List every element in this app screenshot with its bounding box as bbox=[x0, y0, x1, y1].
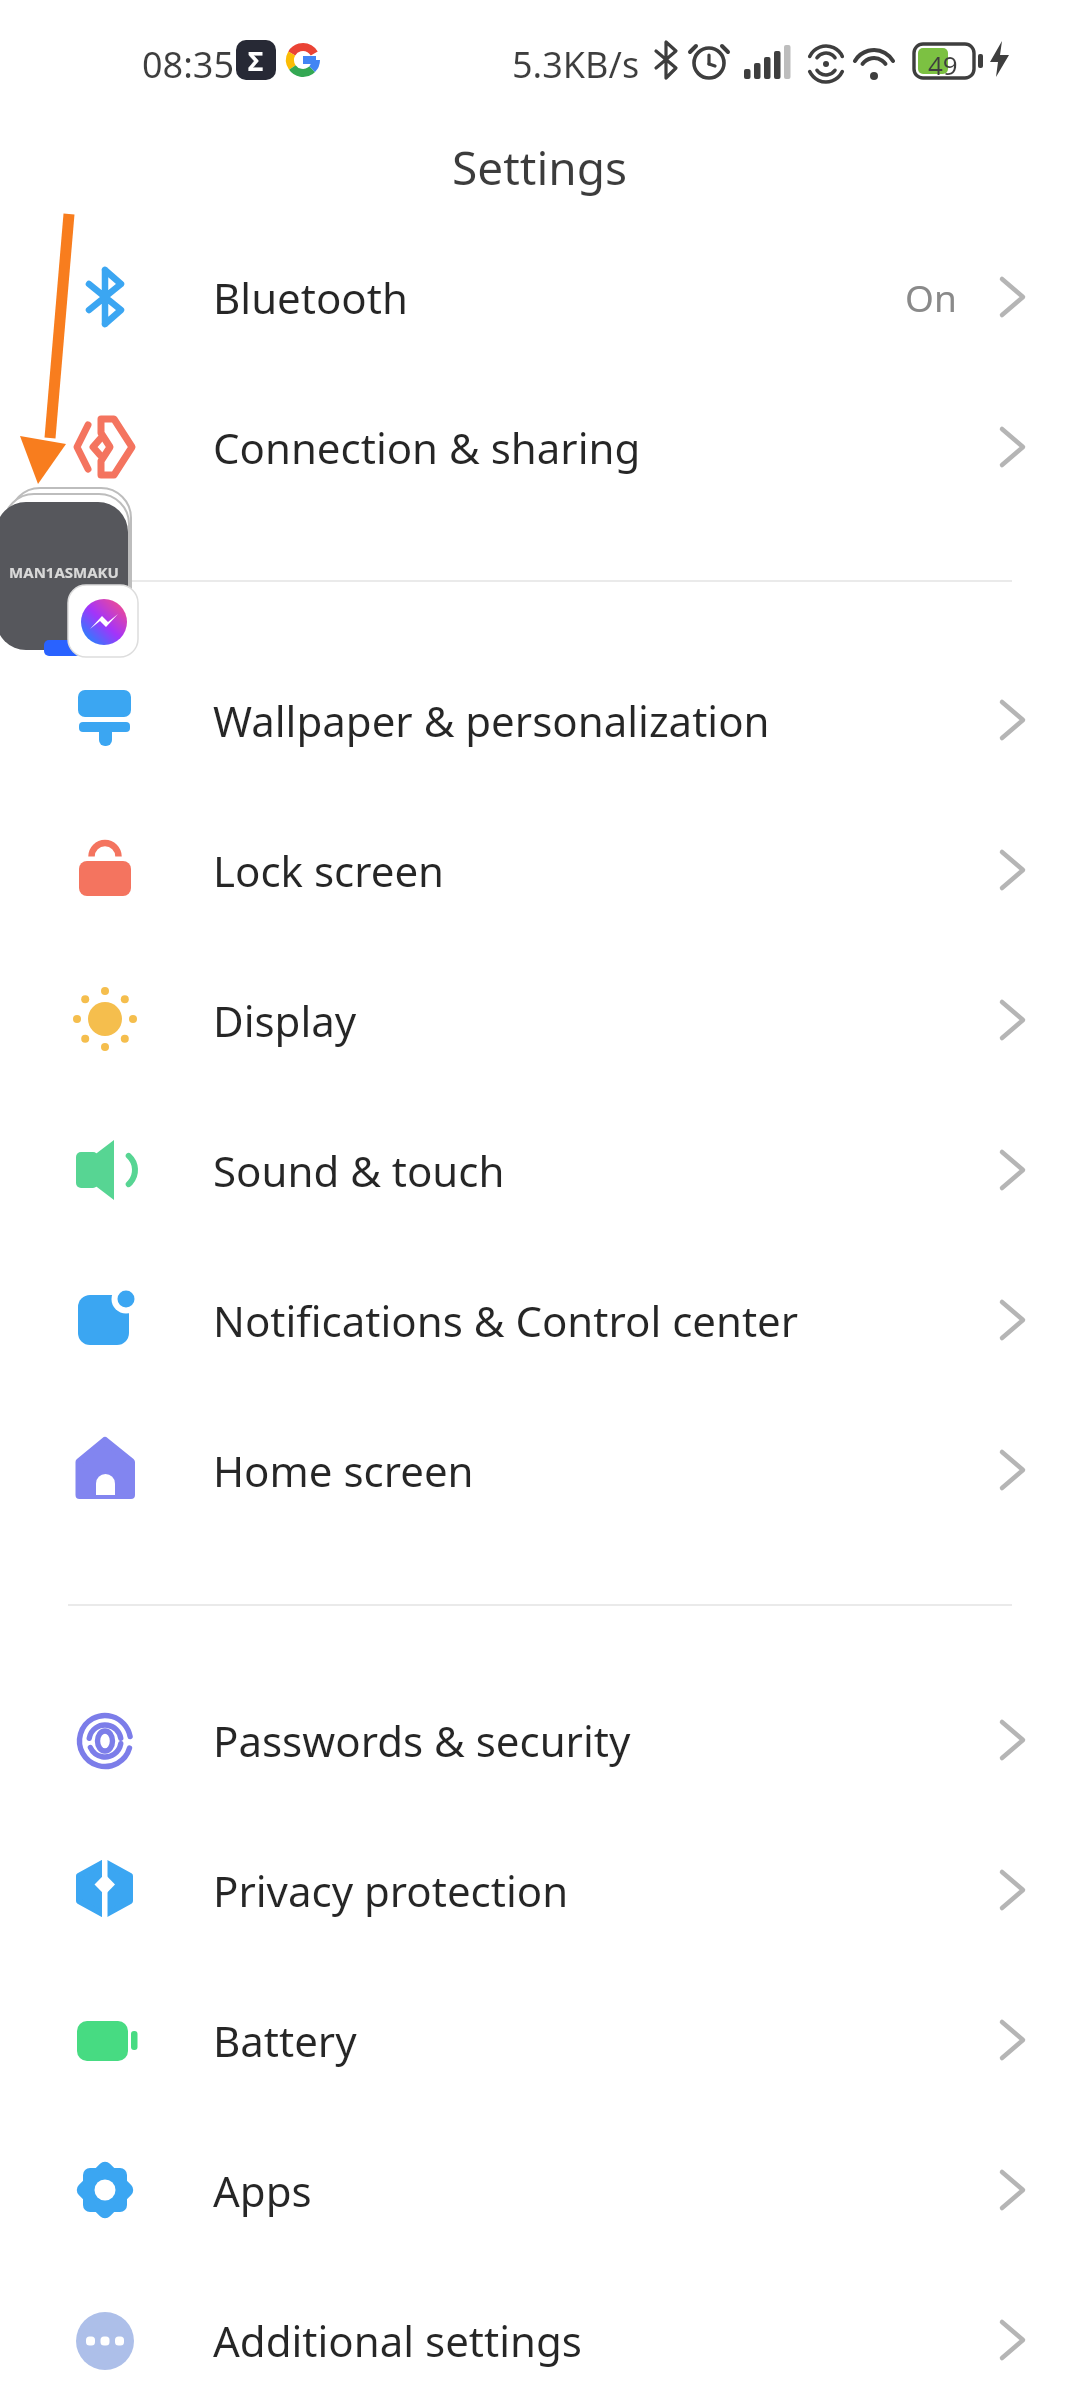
staticText: 08:35 bbox=[142, 40, 235, 89]
staticText: MAN1ASMAKU bbox=[0, 562, 128, 582]
button[interactable]: Bluetooth bbox=[0, 222, 1080, 372]
staticText: Battery bbox=[213, 2012, 357, 2069]
staticText: Display bbox=[213, 992, 357, 1049]
button[interactable]: Additional settings bbox=[0, 2265, 1080, 2400]
staticText: Connection & sharing bbox=[213, 419, 641, 476]
staticText: Apps bbox=[213, 2162, 312, 2219]
button[interactable]: Privacy protection bbox=[0, 1815, 1080, 1965]
staticText: Bluetooth bbox=[213, 269, 408, 326]
staticText: Privacy protection bbox=[213, 1862, 569, 1919]
button[interactable]: Sound & touch bbox=[0, 1095, 1080, 1245]
staticText: 5.3KB/s bbox=[512, 40, 640, 89]
staticText: Passwords & security bbox=[213, 1712, 631, 1769]
button[interactable]: Display bbox=[0, 945, 1080, 1095]
staticText: Additional settings bbox=[213, 2312, 582, 2369]
staticText: Settings bbox=[452, 136, 628, 199]
staticText: Home screen bbox=[213, 1442, 474, 1499]
button[interactable]: Battery bbox=[0, 1965, 1080, 2115]
staticText: Notifications & Control center bbox=[213, 1292, 799, 1349]
staticText: Wallpaper & personalization bbox=[213, 692, 770, 749]
button[interactable]: Wallpaper & personalization bbox=[0, 645, 1080, 795]
button[interactable]: Home screen bbox=[0, 1395, 1080, 1545]
button[interactable]: Lock screen bbox=[0, 795, 1080, 945]
button[interactable]: Connection & sharing bbox=[0, 372, 1080, 522]
button[interactable]: Notifications & Control center bbox=[0, 1245, 1080, 1395]
staticText: Sound & touch bbox=[213, 1142, 505, 1199]
staticText: On bbox=[905, 272, 957, 322]
staticText: Σ bbox=[248, 43, 264, 78]
button[interactable]: Passwords & security bbox=[0, 1665, 1080, 1815]
staticText: Lock screen bbox=[213, 842, 445, 899]
button[interactable]: Apps bbox=[0, 2115, 1080, 2265]
staticText: 49 bbox=[928, 47, 958, 82]
